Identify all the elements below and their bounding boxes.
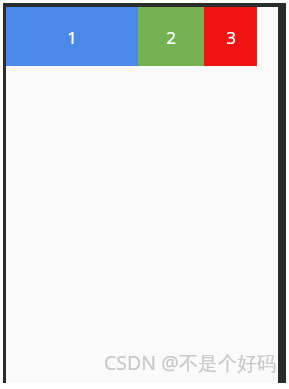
staticText: 1: [67, 26, 77, 49]
button[interactable]: 1: [6, 7, 138, 66]
button[interactable]: 3: [204, 7, 257, 66]
staticText: 2: [166, 26, 176, 49]
staticText: CSDN @不是个好码: [104, 349, 277, 376]
button[interactable]: 2: [138, 7, 204, 66]
staticText: 3: [226, 26, 236, 49]
